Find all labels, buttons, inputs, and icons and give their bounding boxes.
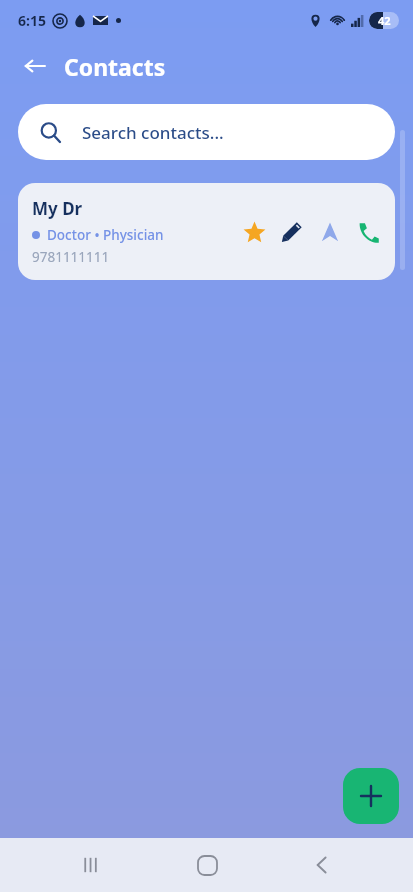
staticText: Doctor • Physician [47, 226, 164, 244]
staticText: 6:15 [18, 11, 46, 30]
staticText: 42 [378, 13, 391, 28]
button[interactable]: Recent apps [67, 841, 115, 889]
button[interactable]: Favorite [241, 219, 267, 245]
button[interactable]: Back [18, 49, 52, 83]
staticText: Search contacts... [82, 121, 224, 144]
button[interactable]: Back [298, 841, 346, 889]
button[interactable]: Home [183, 841, 231, 889]
button[interactable]: Edit [279, 219, 305, 245]
staticText: 9781111111 [32, 248, 110, 266]
button[interactable]: Directions [317, 219, 343, 245]
button[interactable]: Call [355, 219, 381, 245]
button[interactable]: Add contact [343, 768, 399, 824]
staticText: Contacts [64, 51, 166, 82]
button[interactable]: My Dr [18, 183, 395, 280]
staticText: My Dr [32, 197, 83, 220]
button[interactable]: Search contacts... [18, 104, 395, 160]
